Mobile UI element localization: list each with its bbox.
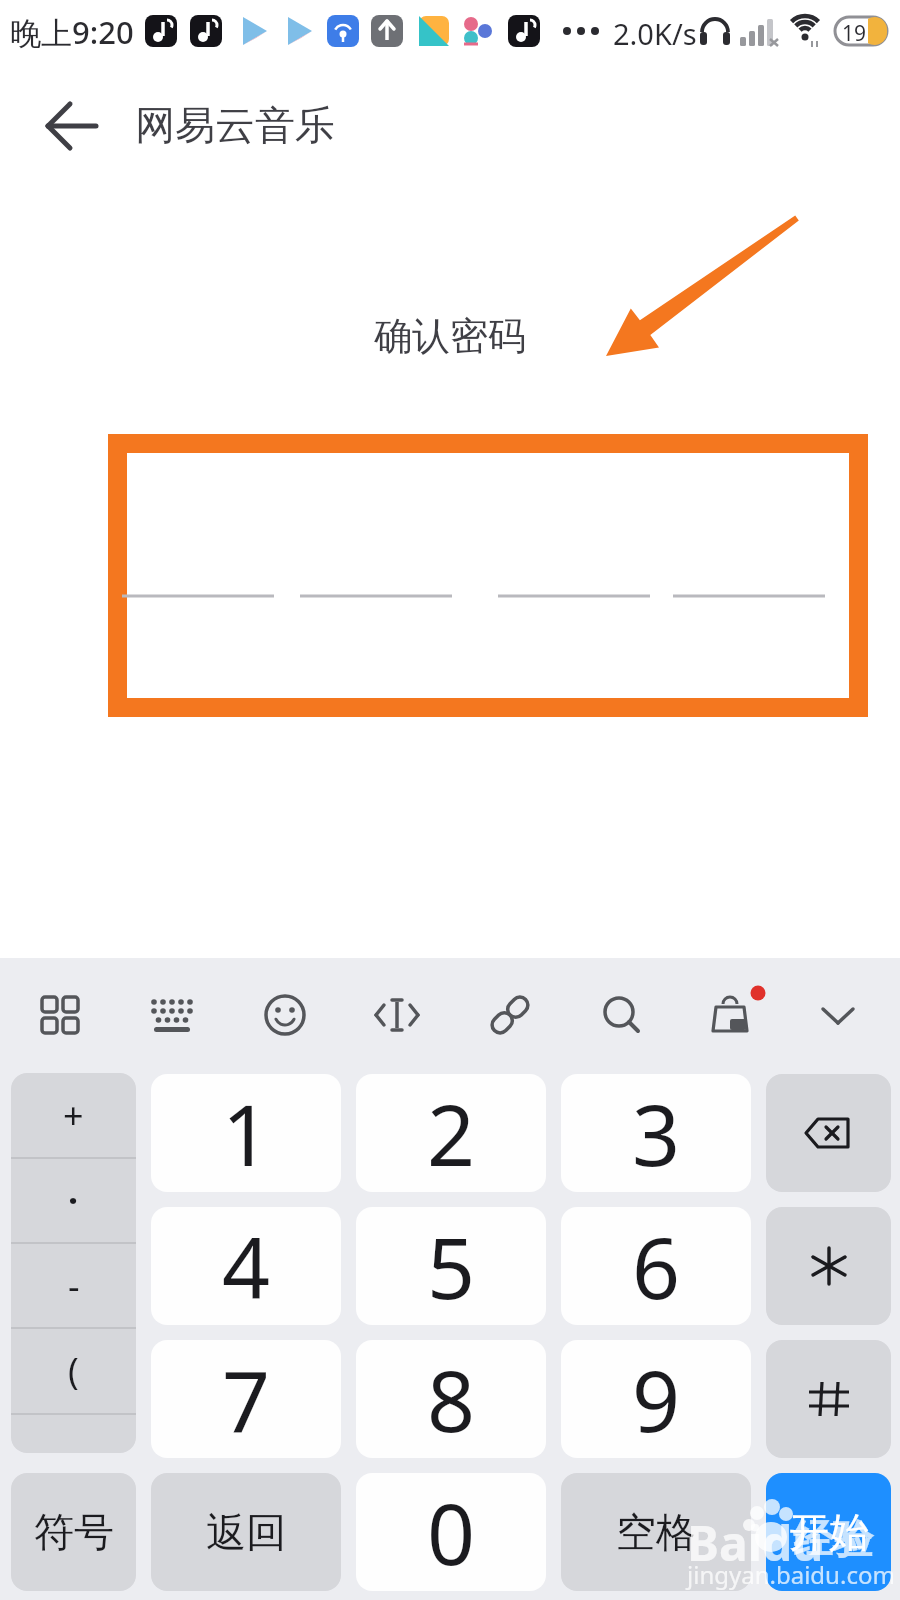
button[interactable]: 5: [356, 1207, 546, 1325]
staticText: ·: [68, 1176, 79, 1225]
button[interactable]: 开始: [766, 1473, 891, 1591]
staticText: 3: [632, 1076, 681, 1190]
staticText: 空格: [616, 1507, 696, 1557]
staticText: +: [63, 1091, 84, 1140]
staticText: 6: [632, 1209, 681, 1323]
staticText: 1: [222, 1076, 271, 1190]
button[interactable]: 网易云音乐: [135, 100, 335, 150]
staticText: Baidu: [687, 1510, 824, 1575]
staticText: 晚上9:20: [10, 11, 134, 53]
staticText: 5: [427, 1209, 476, 1323]
staticText: 19: [842, 19, 867, 48]
staticText: 返回: [206, 1507, 286, 1557]
button[interactable]: [808, 985, 868, 1045]
staticText: 符号: [34, 1507, 114, 1557]
staticText: 8: [427, 1342, 476, 1456]
button[interactable]: 2: [356, 1074, 546, 1192]
button[interactable]: [700, 985, 760, 1045]
staticText: 2: [427, 1076, 476, 1190]
staticText: 4: [222, 1209, 271, 1323]
staticText: 经验: [793, 1514, 873, 1564]
staticText: -: [68, 1261, 80, 1310]
button[interactable]: [367, 985, 427, 1045]
button[interactable]: [30, 985, 90, 1045]
staticText: 9: [632, 1342, 681, 1456]
staticText: 0: [427, 1475, 476, 1589]
button[interactable]: 空格: [561, 1473, 751, 1591]
staticText: 网易云音乐: [135, 100, 335, 150]
button[interactable]: 1: [151, 1074, 341, 1192]
staticText: jingyan.baidu.com: [687, 1558, 895, 1591]
button[interactable]: 返回: [151, 1473, 341, 1591]
button[interactable]: 8: [356, 1340, 546, 1458]
button[interactable]: 0: [356, 1473, 546, 1591]
button[interactable]: [142, 985, 202, 1045]
button[interactable]: [592, 985, 652, 1045]
button[interactable]: [255, 985, 315, 1045]
button[interactable]: [766, 1207, 891, 1325]
button[interactable]: 4: [151, 1207, 341, 1325]
button[interactable]: 符号: [11, 1473, 136, 1591]
button[interactable]: 9: [561, 1340, 751, 1458]
button[interactable]: [30, 89, 110, 164]
staticText: (: [68, 1346, 79, 1395]
button[interactable]: 6: [561, 1207, 751, 1325]
button[interactable]: [480, 985, 540, 1045]
button[interactable]: 7: [151, 1340, 341, 1458]
button[interactable]: +: [11, 1073, 136, 1453]
staticText: 开始: [789, 1507, 869, 1557]
button[interactable]: [766, 1340, 891, 1458]
button[interactable]: 3: [561, 1074, 751, 1192]
button[interactable]: [766, 1074, 891, 1192]
staticText: 7: [222, 1342, 271, 1456]
staticText: 确认密码: [374, 312, 526, 360]
staticText: 2.0K/s: [613, 14, 697, 53]
